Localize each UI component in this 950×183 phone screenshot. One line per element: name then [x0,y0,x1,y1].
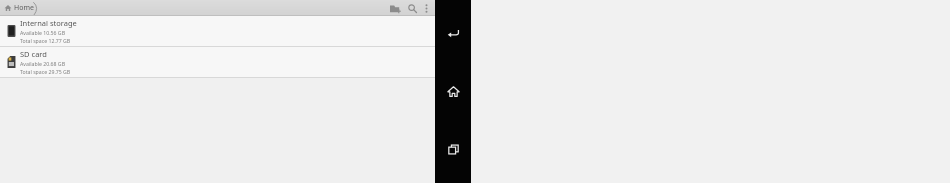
staticText: Total space 12.77 GB [20,37,71,44]
button[interactable]: More options [420,0,432,16]
button[interactable]: Internal storage [0,16,435,46]
button[interactable]: Back [435,17,471,47]
staticText: Total space 29.75 GB [20,68,71,75]
button[interactable]: Home [435,76,471,106]
staticText: Home [14,3,34,13]
button[interactable]: SD card [0,47,435,77]
button[interactable]: Home [0,0,36,16]
staticText: SD card [20,49,47,59]
staticText: Available 20.68 GB [20,60,66,67]
button[interactable]: New folder [386,0,404,16]
button[interactable]: Recent apps [435,134,471,164]
staticText: Internal storage [20,18,77,28]
button[interactable]: Search [404,0,420,16]
staticText: Available 10.56 GB [20,29,66,36]
